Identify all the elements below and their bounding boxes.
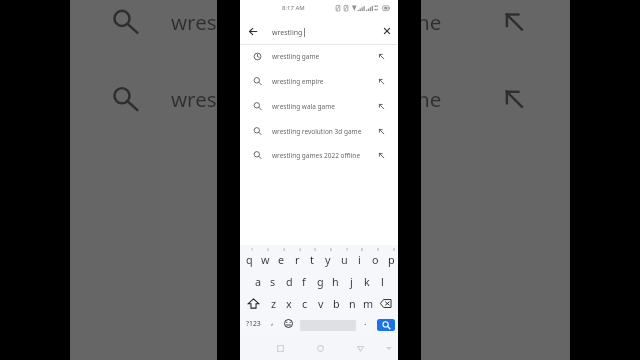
button[interactable]: ,: [266, 313, 279, 333]
button[interactable]: 7: [336, 246, 352, 268]
staticText: wrestling game: [272, 52, 320, 61]
button[interactable]: wrestling empire: [240, 69, 398, 94]
staticText: ne: [417, 8, 442, 36]
staticText: y: [325, 252, 331, 267]
staticText: h: [332, 274, 339, 289]
staticText: 8:17 AM: [282, 4, 305, 12]
button[interactable]: Use suggestion: [373, 98, 389, 114]
staticText: 8: [361, 247, 364, 252]
staticText: f: [302, 274, 306, 289]
button[interactable]: a: [250, 270, 266, 292]
staticText: ne: [417, 85, 442, 113]
staticText: e: [278, 252, 285, 267]
button[interactable]: 1: [241, 246, 257, 268]
staticText: wrest: [171, 85, 224, 113]
button[interactable]: s: [265, 270, 281, 292]
button[interactable]: Use suggestion: [373, 123, 389, 139]
button[interactable]: Emoji: [281, 313, 295, 333]
button[interactable]: Shift: [243, 292, 264, 314]
staticText: a: [255, 274, 262, 289]
staticText: v: [318, 296, 324, 311]
staticText: .: [364, 315, 367, 327]
staticText: t: [310, 252, 314, 267]
button[interactable]: Use suggestion: [373, 73, 389, 89]
button[interactable]: b: [328, 292, 344, 314]
staticText: ,: [271, 315, 274, 327]
button[interactable]: j: [343, 270, 359, 292]
button[interactable]: k: [359, 270, 375, 292]
staticText: n: [349, 296, 356, 311]
button[interactable]: wrestling revolution 3d game: [240, 119, 398, 144]
button[interactable]: m: [360, 292, 376, 314]
staticText: g: [317, 274, 324, 289]
staticText: 9: [377, 247, 380, 252]
button[interactable]: f: [296, 270, 312, 292]
button[interactable]: Use suggestion: [373, 48, 389, 64]
button[interactable]: z: [266, 292, 282, 314]
button[interactable]: 0: [383, 246, 399, 268]
staticText: m: [363, 296, 374, 311]
button[interactable]: Home: [310, 338, 330, 358]
staticText: b: [333, 296, 340, 311]
staticText: wrestling: [272, 28, 303, 38]
staticText: c: [302, 296, 308, 311]
button[interactable]: Back: [350, 338, 370, 358]
button[interactable]: Backspace: [375, 292, 396, 314]
staticText: s: [270, 274, 276, 289]
button[interactable]: 4: [289, 246, 305, 268]
staticText: q: [246, 252, 253, 267]
button[interactable]: 3: [273, 246, 289, 268]
button[interactable]: 5: [304, 246, 320, 268]
button[interactable]: n: [344, 292, 360, 314]
button[interactable]: Recents: [270, 338, 290, 358]
staticText: k: [364, 274, 370, 289]
button[interactable]: 2: [257, 246, 273, 268]
staticText: 7: [346, 247, 349, 252]
button[interactable]: Hide keyboard: [383, 338, 395, 358]
staticText: l: [381, 274, 384, 289]
staticText: p: [388, 252, 395, 267]
staticText: 6: [330, 247, 333, 252]
button[interactable]: h: [327, 270, 343, 292]
button[interactable]: v: [313, 292, 329, 314]
button[interactable]: 9: [367, 246, 383, 268]
staticText: 1: [251, 247, 254, 252]
staticText: wrestling revolution 3d game: [272, 127, 362, 136]
staticText: wrest: [171, 8, 224, 36]
staticText: wrestling wala game: [272, 102, 336, 111]
button[interactable]: Back: [241, 19, 265, 43]
staticText: d: [286, 274, 293, 289]
staticText: u: [341, 252, 348, 267]
button[interactable]: d: [281, 270, 297, 292]
button[interactable]: 8: [351, 246, 367, 268]
button[interactable]: c: [297, 292, 313, 314]
button[interactable]: ?123: [242, 313, 265, 333]
button[interactable]: wrestling games 2022 offline: [240, 143, 398, 168]
button[interactable]: x: [281, 292, 297, 314]
staticText: 2: [267, 247, 270, 252]
staticText: wrestling games 2022 offline: [272, 151, 361, 160]
button[interactable]: 6: [320, 246, 336, 268]
staticText: wrestling empire: [272, 77, 324, 86]
staticText: ?123: [246, 319, 261, 328]
button[interactable]: g: [312, 270, 328, 292]
staticText: i: [358, 252, 361, 267]
staticText: 5: [314, 247, 317, 252]
staticText: w: [261, 252, 270, 267]
button[interactable]: Clear query: [375, 19, 399, 43]
button[interactable]: Search: [377, 319, 395, 331]
button[interactable]: .: [359, 313, 372, 333]
button[interactable]: l: [374, 270, 390, 292]
staticText: 3: [283, 247, 286, 252]
staticText: o: [372, 252, 379, 267]
button[interactable]: wrestling game: [240, 44, 398, 69]
staticText: z: [271, 296, 277, 311]
staticText: 4: [299, 247, 302, 252]
staticText: x: [286, 296, 292, 311]
staticText: r: [295, 252, 300, 267]
button[interactable]: Use suggestion: [373, 147, 389, 163]
staticText: 0: [393, 247, 396, 252]
button[interactable]: wrestling wala game: [240, 94, 398, 119]
staticText: j: [350, 274, 353, 289]
